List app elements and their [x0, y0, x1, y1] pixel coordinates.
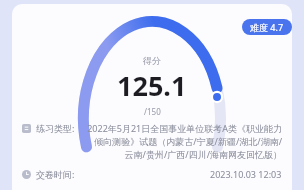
other: Practice type	[22, 124, 31, 133]
staticText: 2022年5月21日全国事业单位联考A类《职业能力倾向测验》试题（内蒙古/宁夏/…	[87, 122, 282, 161]
staticText: /150	[144, 106, 161, 117]
other: Submit time	[22, 170, 31, 179]
button[interactable]: Submit time	[22, 168, 282, 180]
staticText: 练习类型:	[36, 122, 75, 134]
staticText: 125.1	[117, 67, 187, 104]
button[interactable]: Practice type	[22, 122, 282, 161]
staticText: 得分	[143, 55, 161, 66]
staticText: 2023.10.03 12:03	[210, 168, 282, 180]
staticText: 交卷时间:	[36, 168, 75, 180]
button[interactable]: 得分	[12, 4, 292, 190]
staticText: 难度 4.7	[250, 21, 284, 33]
button[interactable]: 难度 4.7	[242, 19, 292, 35]
